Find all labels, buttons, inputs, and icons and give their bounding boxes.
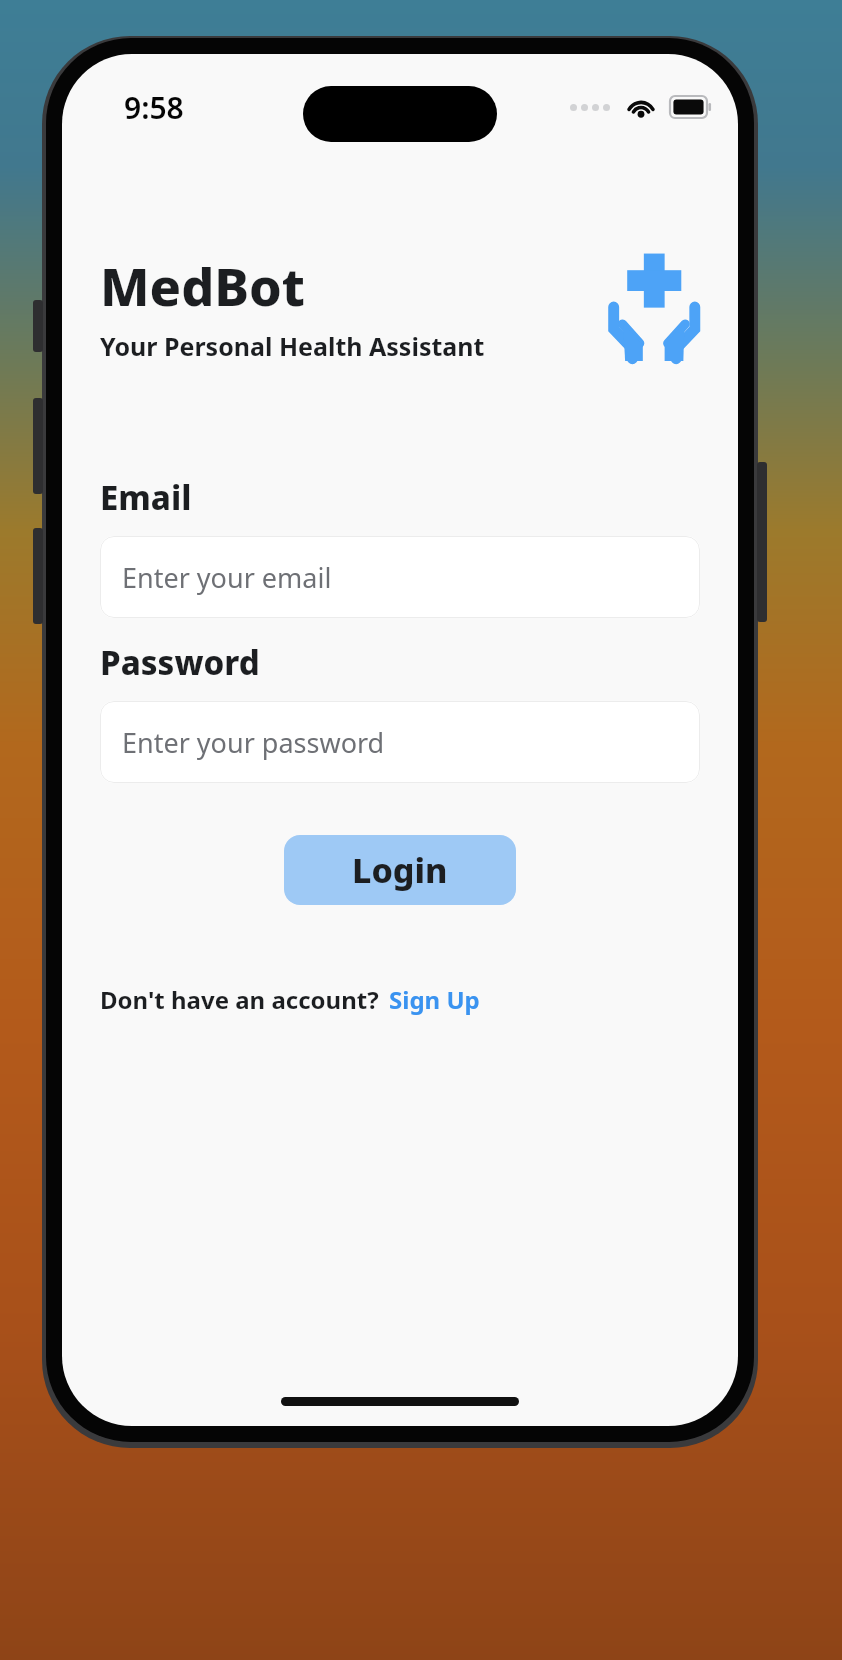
other: MedBot logo xyxy=(596,252,700,362)
staticText: Enter your email xyxy=(122,559,332,596)
staticText: MedBot xyxy=(100,250,306,321)
staticText: Enter your password xyxy=(122,724,385,761)
button[interactable]: Login xyxy=(284,835,516,905)
button[interactable]: Sign Up xyxy=(389,983,480,1016)
button[interactable]: Enter your email xyxy=(100,536,700,618)
button[interactable]: Enter your password xyxy=(100,701,700,783)
staticText: Don't have an account? xyxy=(100,983,379,1016)
staticText: Your Personal Health Assistant xyxy=(100,329,485,363)
staticText: Sign Up xyxy=(389,983,480,1016)
staticText: 9:58 xyxy=(124,87,184,128)
staticText: Login xyxy=(352,847,448,893)
staticText: Email xyxy=(100,475,192,520)
staticText: Password xyxy=(100,640,260,685)
